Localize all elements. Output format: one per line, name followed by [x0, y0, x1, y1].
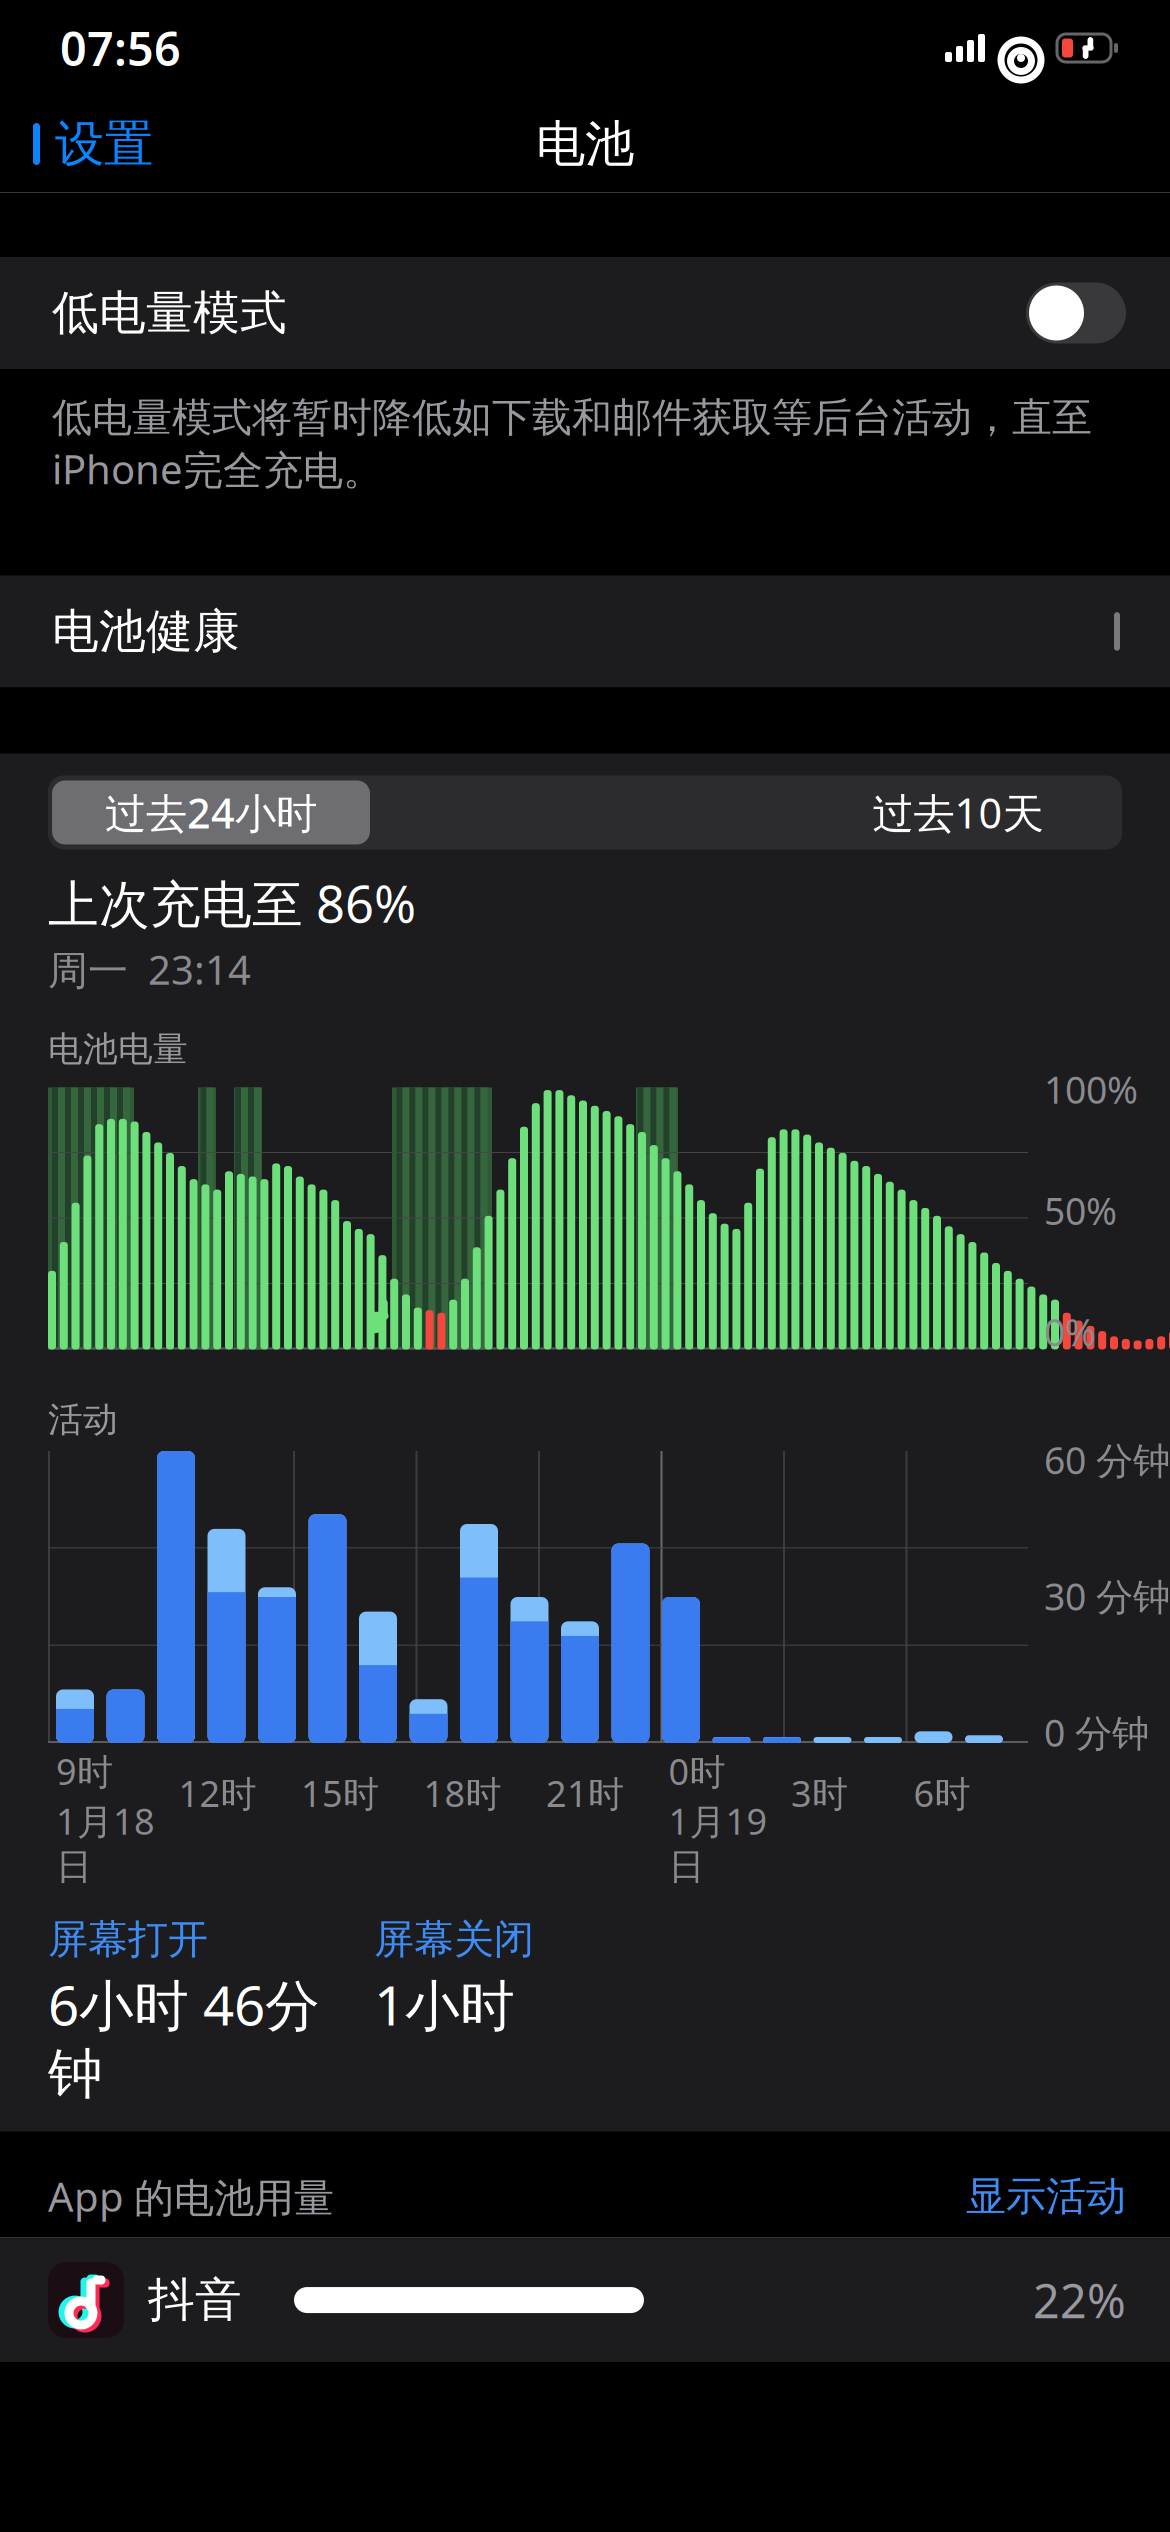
staticText: 电池 — [536, 114, 634, 174]
staticText: 100% — [1044, 1064, 1138, 1114]
staticText: 周一 23:14 — [48, 943, 251, 996]
staticText: 50% — [1044, 1186, 1117, 1235]
staticText: 18时 — [423, 1769, 501, 1817]
staticText: 屏幕关闭 — [374, 1915, 534, 1964]
staticText: 显示活动 — [966, 2172, 1126, 2221]
staticText: 6时 — [913, 1769, 970, 1817]
button[interactable]: 过去24小时 — [52, 780, 370, 844]
staticText: 9时 — [56, 1747, 113, 1795]
staticText: 电池电量 — [48, 1028, 188, 1070]
staticText: 60 分钟 — [1044, 1435, 1170, 1485]
staticText: 低电量模式将暂时降低如下载和邮件获取等后台活动，直至 iPhone完全充电。 — [52, 393, 1092, 495]
staticText: 屏幕打开 — [48, 1915, 208, 1964]
staticText: 15时 — [301, 1769, 379, 1817]
button[interactable]: 显示活动 — [966, 2172, 1126, 2221]
staticText: 活动 — [48, 1398, 118, 1441]
staticText: 3时 — [791, 1769, 848, 1817]
button[interactable]: 低电量模式 — [0, 257, 1170, 369]
staticText: 12时 — [178, 1769, 256, 1817]
staticText: 低电量模式 — [52, 284, 287, 342]
staticText: 设置 — [55, 114, 153, 174]
staticText: 22% — [1033, 2269, 1126, 2331]
staticText: 0时 — [668, 1747, 725, 1795]
staticText: 21时 — [546, 1769, 624, 1817]
staticText: 6小时 46分钟 — [48, 1968, 320, 2108]
staticText: 30 分钟 — [1044, 1571, 1170, 1621]
staticText: 1月19日 — [668, 1797, 767, 1889]
button[interactable]: 电池健康 — [0, 575, 1170, 687]
staticText: 1月18日 — [56, 1797, 155, 1889]
staticText: 过去24小时 — [105, 785, 317, 840]
button[interactable]: 设置 — [0, 98, 167, 190]
button[interactable]: 过去10天 — [808, 780, 1108, 844]
button[interactable]: 抖音 — [0, 2238, 1170, 2362]
staticText: 0 分钟 — [1044, 1707, 1149, 1757]
staticText: 电池健康 — [52, 603, 240, 660]
staticText: 过去10天 — [872, 785, 1043, 840]
staticText: 0% — [1044, 1307, 1096, 1356]
staticText: App 的电池用量 — [48, 2170, 334, 2223]
staticText: 上次充电至 86% — [48, 869, 416, 937]
staticText: 1小时 — [374, 1968, 515, 2041]
staticText: 抖音 — [148, 2271, 242, 2329]
staticText: 07:56 — [60, 17, 181, 79]
